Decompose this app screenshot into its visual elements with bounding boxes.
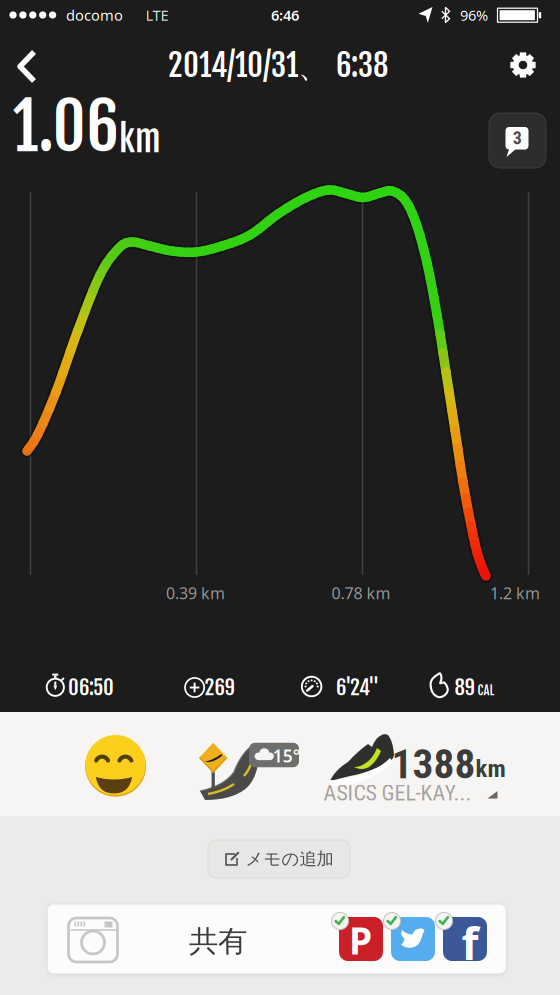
button[interactable]: Twitter	[391, 917, 435, 961]
button[interactable]: Mood	[85, 735, 146, 797]
button[interactable]: Settings	[501, 43, 545, 87]
staticText: 96%	[460, 5, 488, 25]
staticText: 2014/10/31、 6:38	[168, 46, 388, 86]
staticText: 共有	[189, 923, 247, 959]
staticText: 3	[513, 127, 522, 149]
staticText: CAL	[477, 682, 494, 698]
staticText: 6:46	[271, 5, 299, 25]
button[interactable]: Add note	[208, 840, 350, 878]
staticText: 15°	[273, 744, 300, 767]
button[interactable]: Facebook	[443, 917, 487, 961]
staticText: 0.39 km	[166, 582, 225, 604]
staticText: km	[119, 117, 161, 161]
staticText: 89	[455, 674, 475, 700]
staticText: 06:50	[68, 674, 114, 700]
staticText: 6'24"	[336, 674, 379, 700]
button[interactable]: Shoes	[322, 724, 512, 804]
staticText: メモの追加	[245, 848, 333, 870]
staticText: 1.2 km	[490, 582, 540, 604]
staticText: 1.06	[12, 87, 119, 167]
button[interactable]: Comments	[489, 113, 546, 168]
button[interactable]: Instagram	[68, 917, 118, 963]
staticText: docomo	[66, 5, 123, 25]
staticText: P	[349, 915, 372, 965]
button[interactable]: Back	[4, 43, 50, 90]
staticText: ASICS GEL-KAY...	[324, 780, 472, 806]
staticText: km	[475, 754, 505, 783]
staticText: LTE	[145, 5, 168, 25]
staticText: 0.78 km	[331, 582, 390, 604]
button[interactable]: Terrain and weather	[192, 718, 304, 810]
staticText: 1388	[392, 740, 476, 788]
button[interactable]: Pinterest	[339, 917, 383, 961]
staticText: 269	[204, 674, 234, 700]
staticText: f	[461, 914, 478, 972]
